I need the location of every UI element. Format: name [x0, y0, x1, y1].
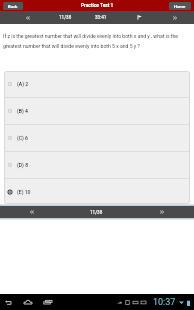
button[interactable]: Back — [3, 2, 23, 10]
staticText: If z is the greatest number that will di… — [3, 33, 191, 49]
button[interactable]: Home — [22, 296, 34, 308]
staticText: 33:41 — [95, 15, 107, 20]
button[interactable]: (C) 6 — [4, 125, 190, 151]
staticText: Home — [174, 4, 186, 9]
staticText: Practice Test 1 — [81, 3, 114, 9]
staticText: (B) 4 — [17, 108, 28, 114]
button[interactable]: Next question — [154, 11, 194, 24]
staticText: Back — [8, 4, 18, 9]
button[interactable]: (A) 2 — [4, 71, 190, 97]
button[interactable]: (E) 10 — [4, 179, 190, 204]
button[interactable]: Next question — [129, 206, 194, 218]
staticText: (D) 8 — [17, 162, 29, 168]
button[interactable]: Flag question — [136, 14, 143, 21]
staticText: 10:37 — [153, 297, 176, 308]
staticText: (A) 2 — [17, 81, 29, 87]
button[interactable]: Recent apps — [42, 296, 54, 308]
staticText: (C) 6 — [17, 135, 28, 141]
staticText: 11/38 — [59, 15, 72, 20]
button[interactable]: (B) 4 — [4, 98, 190, 124]
staticText: 11/38 — [90, 210, 103, 215]
button[interactable]: Home — [169, 2, 191, 10]
button[interactable]: (D) 8 — [4, 152, 190, 178]
button[interactable]: Back — [2, 296, 14, 308]
staticText: (E) 10 — [17, 189, 31, 195]
button[interactable]: Previous question — [0, 11, 56, 24]
button[interactable]: Previous question — [0, 206, 64, 218]
